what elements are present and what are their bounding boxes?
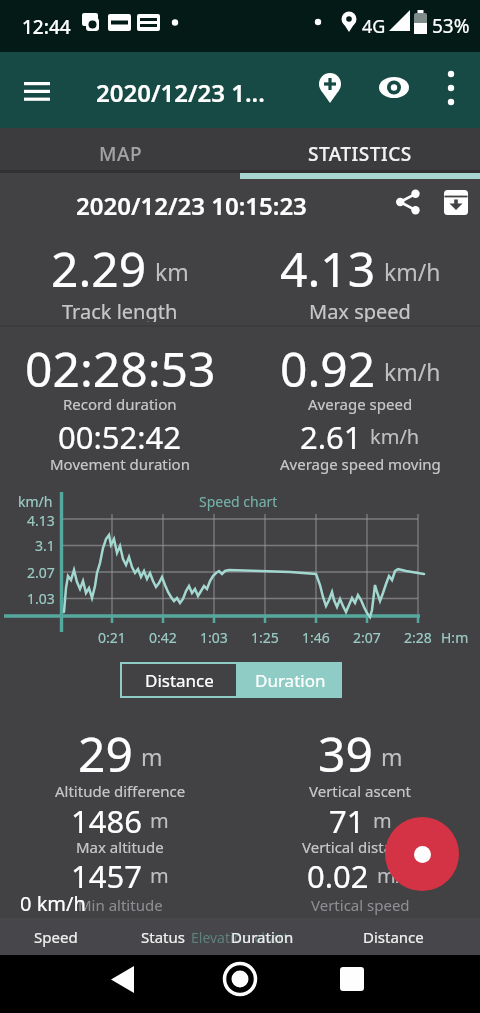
staticText: Vertical ascent bbox=[309, 781, 411, 801]
staticText: km/h bbox=[384, 356, 441, 387]
staticText: 0:42 bbox=[149, 628, 177, 646]
staticText: km/h bbox=[384, 256, 441, 287]
staticText: Elevation chart bbox=[191, 928, 289, 947]
button[interactable] bbox=[432, 62, 472, 118]
staticText: Distance bbox=[145, 669, 214, 692]
staticText: 53% bbox=[432, 13, 470, 39]
button[interactable] bbox=[308, 62, 352, 118]
staticText: Distance bbox=[363, 927, 424, 947]
button[interactable] bbox=[372, 62, 416, 118]
staticText: Min altitude bbox=[78, 895, 163, 915]
staticText: 2:28 bbox=[404, 628, 432, 646]
staticText: Duration bbox=[255, 669, 326, 692]
button[interactable] bbox=[434, 180, 478, 224]
staticText: km/h bbox=[18, 492, 53, 511]
button[interactable]: STATISTICS bbox=[240, 131, 480, 176]
staticText: Average speed bbox=[308, 394, 413, 414]
staticText: 12:44 bbox=[22, 14, 71, 40]
staticText: Max altitude bbox=[76, 837, 164, 857]
staticText: 4G bbox=[362, 14, 386, 39]
button[interactable] bbox=[385, 817, 459, 891]
staticText: 29 bbox=[78, 721, 133, 778]
staticText: Average speed moving bbox=[280, 454, 441, 474]
staticText: Speed bbox=[34, 927, 78, 947]
button[interactable]: MAP bbox=[0, 131, 240, 176]
button[interactable]: Distance bbox=[120, 662, 238, 698]
staticText: m/s bbox=[377, 862, 413, 889]
button[interactable] bbox=[92, 955, 152, 1013]
staticText: Speed chart bbox=[199, 492, 278, 511]
staticText: 2.61 bbox=[300, 416, 362, 453]
staticText: km bbox=[155, 256, 189, 287]
button[interactable] bbox=[386, 180, 430, 224]
staticText: 2020/12/23 1... bbox=[96, 76, 265, 109]
staticText: MAP bbox=[99, 141, 142, 167]
staticText: STATISTICS bbox=[308, 141, 412, 167]
staticText: m bbox=[141, 741, 163, 772]
staticText: Altitude difference bbox=[55, 781, 186, 801]
staticText: 71 bbox=[329, 800, 365, 837]
staticText: 02:28:53 bbox=[25, 336, 216, 393]
staticText: 2020/12/23 10:15:23 bbox=[76, 189, 307, 222]
staticText: 39 bbox=[318, 721, 373, 778]
staticText: 0.02 bbox=[307, 855, 369, 892]
staticText: Record duration bbox=[63, 394, 177, 414]
staticText: m bbox=[150, 862, 169, 889]
staticText: Track length bbox=[62, 298, 178, 322]
staticText: m bbox=[150, 807, 169, 834]
button[interactable]: Duration bbox=[238, 662, 342, 698]
staticText: 00:52:42 bbox=[58, 416, 182, 453]
staticText: 4.13 bbox=[280, 236, 376, 293]
staticText: Movement duration bbox=[50, 454, 190, 474]
button[interactable] bbox=[14, 70, 60, 112]
staticText: 2.29 bbox=[51, 236, 147, 293]
staticText: Vertical speed bbox=[311, 895, 410, 915]
staticText: 2.07 bbox=[27, 563, 55, 582]
staticText: H:m bbox=[441, 628, 469, 646]
staticText: km/h bbox=[370, 423, 420, 450]
staticText: 0.92 bbox=[280, 336, 376, 393]
staticText: 3.1 bbox=[35, 536, 55, 555]
staticText: 1:46 bbox=[302, 628, 330, 646]
staticText: Status bbox=[141, 927, 185, 947]
staticText: Vertical distance bbox=[302, 837, 418, 857]
staticText: 1486 bbox=[71, 800, 142, 837]
staticText: Duration bbox=[231, 927, 294, 947]
staticText: 1457 bbox=[71, 855, 142, 892]
staticText: 0:21 bbox=[98, 628, 126, 646]
staticText: 0 km/h bbox=[20, 890, 86, 916]
staticText: 2:07 bbox=[353, 628, 381, 646]
button[interactable] bbox=[322, 955, 382, 1013]
staticText: Max speed bbox=[309, 298, 411, 322]
staticText: 4.13 bbox=[27, 511, 55, 530]
staticText: m bbox=[381, 741, 403, 772]
staticText: m bbox=[373, 807, 392, 834]
staticText: 1:03 bbox=[200, 628, 228, 646]
button[interactable] bbox=[210, 955, 270, 1013]
staticText: 1.03 bbox=[27, 589, 55, 608]
staticText: 1:25 bbox=[251, 628, 279, 646]
